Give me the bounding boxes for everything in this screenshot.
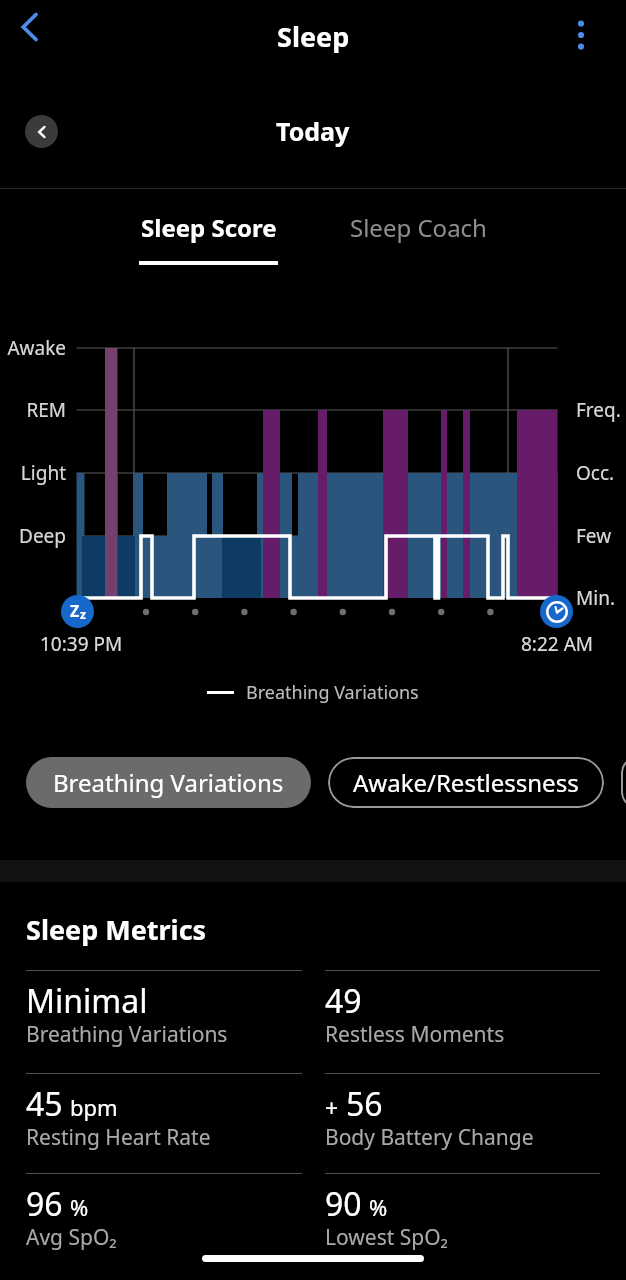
staticText: Few	[576, 523, 612, 549]
button[interactable]: Sleep Score	[104, 189, 313, 267]
staticText: bpm	[70, 1092, 118, 1122]
staticText: Awake	[0, 335, 66, 361]
button[interactable]: Movement	[621, 757, 626, 808]
staticText: 8:22 AM	[521, 631, 594, 657]
staticText: Breathing Variations	[26, 1020, 228, 1049]
staticText: %	[70, 1192, 89, 1222]
button[interactable]: 45	[26, 1082, 302, 1155]
button[interactable]: Breathing Variations	[26, 757, 311, 808]
staticText: REM	[0, 397, 66, 423]
staticText: 56	[346, 1082, 383, 1126]
staticText: Lowest SpO₂	[325, 1223, 448, 1252]
staticText: Freq.	[576, 397, 621, 423]
staticText: Minimal	[26, 979, 148, 1023]
staticText: 10:39 PM	[40, 631, 123, 657]
button[interactable]: Previous day	[25, 115, 58, 148]
staticText: Occ.	[576, 460, 615, 486]
staticText: z	[80, 606, 86, 622]
button[interactable]: 96	[26, 1182, 302, 1255]
button[interactable]: 49	[325, 979, 601, 1052]
staticText: Light	[0, 460, 66, 486]
button[interactable]: More options	[557, 11, 605, 59]
staticText: 49	[325, 979, 362, 1023]
button[interactable]: Wake up time	[540, 595, 573, 628]
staticText: Min.	[576, 585, 615, 611]
staticText: Z	[70, 600, 80, 622]
staticText: Breathing Variations	[53, 766, 284, 799]
staticText: Resting Heart Rate	[26, 1123, 211, 1152]
button[interactable]: Minimal	[26, 979, 302, 1052]
staticText: 96	[26, 1182, 63, 1226]
button[interactable]: Awake/Restlessness	[328, 757, 604, 808]
staticText: Breathing Variations	[246, 680, 419, 705]
button[interactable]: 90	[325, 1182, 601, 1255]
staticText: Sleep Score	[141, 211, 277, 244]
staticText: 90	[325, 1182, 362, 1226]
staticText: Deep	[0, 523, 66, 549]
staticText: Sleep Metrics	[26, 911, 207, 948]
staticText: Awake/Restlessness	[353, 766, 579, 799]
button[interactable]: Sleep start time	[61, 595, 94, 628]
button[interactable]: Sleep Coach	[313, 189, 523, 267]
staticText: Today	[276, 114, 350, 148]
staticText: Restless Moments	[325, 1020, 505, 1049]
staticText: Avg SpO₂	[26, 1223, 117, 1252]
staticText: Sleep Coach	[350, 211, 487, 244]
staticText: Body Battery Change	[325, 1123, 534, 1152]
button[interactable]: +	[325, 1082, 601, 1155]
button[interactable]: Back	[6, 9, 58, 61]
staticText: 45	[26, 1082, 63, 1126]
staticText: +	[325, 1092, 339, 1123]
staticText: Sleep	[277, 18, 350, 55]
staticText: %	[369, 1192, 388, 1222]
